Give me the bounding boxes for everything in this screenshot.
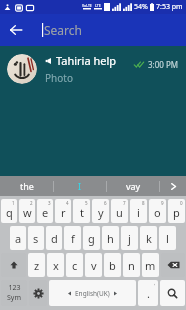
staticText: y <box>98 205 104 220</box>
button[interactable]: 9 <box>149 199 166 223</box>
button[interactable]: More suggestions <box>160 176 186 196</box>
staticText: English(UK) <box>75 289 110 298</box>
staticText: I <box>78 180 82 192</box>
staticText: 54% <box>134 2 148 12</box>
staticText: 7 <box>123 200 126 206</box>
staticText: 3:00 PM <box>148 59 179 70</box>
button[interactable]: 3 <box>37 199 53 223</box>
button[interactable]: vay <box>107 176 159 196</box>
staticText: 0 <box>180 200 183 206</box>
staticText: g <box>88 231 95 246</box>
staticText: r <box>61 205 66 220</box>
staticText: o <box>154 205 161 220</box>
button[interactable]: n <box>123 253 140 277</box>
staticText: p <box>173 205 180 220</box>
button[interactable]: 1 <box>1 199 17 223</box>
staticText: x <box>53 258 59 273</box>
staticText: 123 <box>8 283 21 293</box>
staticText: Search <box>44 22 82 38</box>
staticText: , <box>154 280 156 286</box>
staticText: n <box>128 258 135 273</box>
button[interactable]: , <box>138 280 158 306</box>
staticText: v <box>91 258 97 273</box>
button[interactable]: k <box>140 226 157 250</box>
button[interactable]: Backspace <box>161 253 185 277</box>
staticText: f <box>71 231 75 246</box>
button[interactable]: h <box>102 226 119 250</box>
button[interactable]: the <box>0 176 53 196</box>
button[interactable]: 2 <box>19 199 35 223</box>
staticText: b <box>109 258 116 273</box>
staticText: 5 <box>85 200 88 206</box>
staticText: w <box>23 205 32 220</box>
button[interactable]: 0 <box>168 199 185 223</box>
staticText: c <box>72 258 78 273</box>
button[interactable]: s <box>28 226 44 250</box>
staticText: e <box>42 205 49 220</box>
staticText: q <box>6 205 13 220</box>
staticText: Tahiria help <box>56 53 117 68</box>
button[interactable]: 8 <box>130 199 147 223</box>
staticText: h <box>107 231 114 246</box>
button[interactable]: m <box>142 253 159 277</box>
button[interactable]: 7 <box>111 199 128 223</box>
staticText: 8 <box>142 200 145 206</box>
button[interactable]: Search <box>160 280 185 306</box>
button[interactable]: l <box>159 226 176 250</box>
staticText: Sym <box>7 293 21 303</box>
staticText: l <box>166 231 169 246</box>
staticText: 4 <box>66 200 69 206</box>
button[interactable]: Settings <box>29 280 47 306</box>
button[interactable]: v <box>85 253 102 277</box>
button[interactable]: x <box>47 253 64 277</box>
staticText: s <box>33 231 39 246</box>
staticText: i <box>137 205 140 220</box>
staticText: 2 <box>30 200 33 206</box>
staticText: u <box>116 205 123 220</box>
button[interactable]: z <box>28 253 45 277</box>
button[interactable]: f <box>64 226 81 250</box>
button[interactable]: 6 <box>92 199 109 223</box>
button[interactable]: d <box>46 226 62 250</box>
staticText: the <box>20 180 34 192</box>
staticText: LTE <box>95 3 101 8</box>
staticText: 7:53 pm <box>156 2 183 12</box>
staticText: 3 <box>48 200 51 206</box>
staticText: 6 <box>104 200 107 206</box>
button[interactable]: a <box>10 226 26 250</box>
staticText: t <box>80 205 84 220</box>
button[interactable]: I <box>54 176 106 196</box>
staticText: k <box>146 231 152 246</box>
staticText: 9 <box>161 200 164 206</box>
staticText: Photo <box>45 71 73 85</box>
button[interactable]: c <box>66 253 83 277</box>
button[interactable]: Back <box>0 14 32 46</box>
button[interactable]: Space <box>49 280 136 306</box>
button[interactable]: j <box>121 226 138 250</box>
button[interactable]: 4 <box>55 199 71 223</box>
staticText: VoLTE <box>82 3 92 8</box>
staticText: z <box>34 258 40 273</box>
staticText: vay <box>126 180 141 192</box>
button[interactable]: Shift <box>1 253 26 277</box>
staticText: 1 <box>12 200 15 206</box>
button[interactable]: 5 <box>73 199 90 223</box>
staticText: a <box>15 231 22 246</box>
staticText: j <box>128 231 131 246</box>
button[interactable]: g <box>83 226 100 250</box>
button[interactable]: 123 <box>1 280 27 306</box>
button[interactable]: b <box>104 253 121 277</box>
staticText: . <box>147 286 150 301</box>
button[interactable]: Tahiria help <box>0 46 186 92</box>
staticText: m <box>145 258 156 273</box>
staticText: d <box>51 231 58 246</box>
